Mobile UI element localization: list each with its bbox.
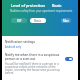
button[interactable]: Notification settings (5, 40, 36, 49)
staticText: Basic (34, 19, 42, 23)
button[interactable]: Notifications toggle (65, 57, 73, 61)
staticText: Android only (5, 45, 22, 49)
button[interactable]: Basic (30, 18, 46, 23)
staticText: Off (17, 19, 22, 23)
staticText: You will be notified if there is a perso… (5, 62, 63, 75)
staticText: Max (63, 19, 69, 23)
button[interactable]: Max (61, 18, 71, 23)
staticText: Level of protection (11, 3, 45, 8)
staticText: Notification settings (5, 40, 36, 44)
button[interactable]: Off (11, 18, 27, 23)
staticText: Basic (52, 3, 62, 8)
staticText: Notify me when there is a suspicious per… (5, 53, 63, 61)
staticText: Realtime safety from your apartment requ… (10, 9, 73, 13)
